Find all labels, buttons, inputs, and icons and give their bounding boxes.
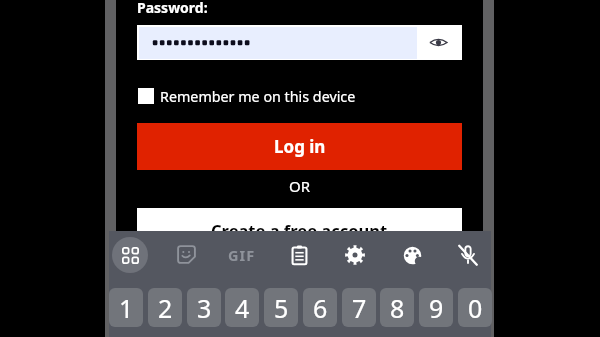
button[interactable]: Show password xyxy=(416,25,461,60)
button[interactable]: 2 xyxy=(148,288,182,327)
staticText: 3 xyxy=(197,291,212,325)
staticText: 2 xyxy=(158,291,173,325)
button[interactable]: 6 xyxy=(303,288,337,327)
staticText: 1 xyxy=(119,291,134,325)
button[interactable]: Stickers xyxy=(168,236,204,272)
staticText: OR xyxy=(289,176,311,194)
button[interactable]: Clipboard xyxy=(281,237,317,273)
button[interactable]: Voice input off xyxy=(450,237,486,273)
staticText: GIF xyxy=(228,245,256,265)
button[interactable]: Remember me on this device xyxy=(138,85,356,107)
staticText: 7 xyxy=(352,291,367,325)
button[interactable]: 1 xyxy=(109,288,143,327)
staticText: Remember me on this device xyxy=(160,87,356,106)
staticText: Password: xyxy=(137,0,208,17)
button[interactable]: 4 xyxy=(225,288,259,327)
staticText: 9 xyxy=(429,291,444,325)
staticText: 0 xyxy=(468,291,483,325)
staticText: Create a free account xyxy=(211,219,388,241)
button[interactable]: Settings xyxy=(337,237,373,273)
staticText: 8 xyxy=(390,291,405,325)
staticText: 4 xyxy=(235,291,250,325)
button[interactable]: 9 xyxy=(419,288,453,327)
button[interactable]: 3 xyxy=(187,288,221,327)
button[interactable]: Create a free account xyxy=(137,208,462,252)
button[interactable]: 8 xyxy=(380,288,414,327)
staticText: Log in xyxy=(274,135,326,158)
button[interactable]: Themes xyxy=(394,237,430,273)
button[interactable]: GIF xyxy=(224,237,260,273)
button[interactable]: Show password xyxy=(137,25,462,60)
button[interactable]: 0 xyxy=(458,288,492,327)
staticText: 6 xyxy=(313,291,328,325)
button[interactable]: Apps xyxy=(112,237,148,273)
button[interactable]: 7 xyxy=(342,288,376,327)
button[interactable]: Log in xyxy=(137,123,462,170)
staticText: 5 xyxy=(274,291,289,325)
button[interactable]: 5 xyxy=(264,288,298,327)
